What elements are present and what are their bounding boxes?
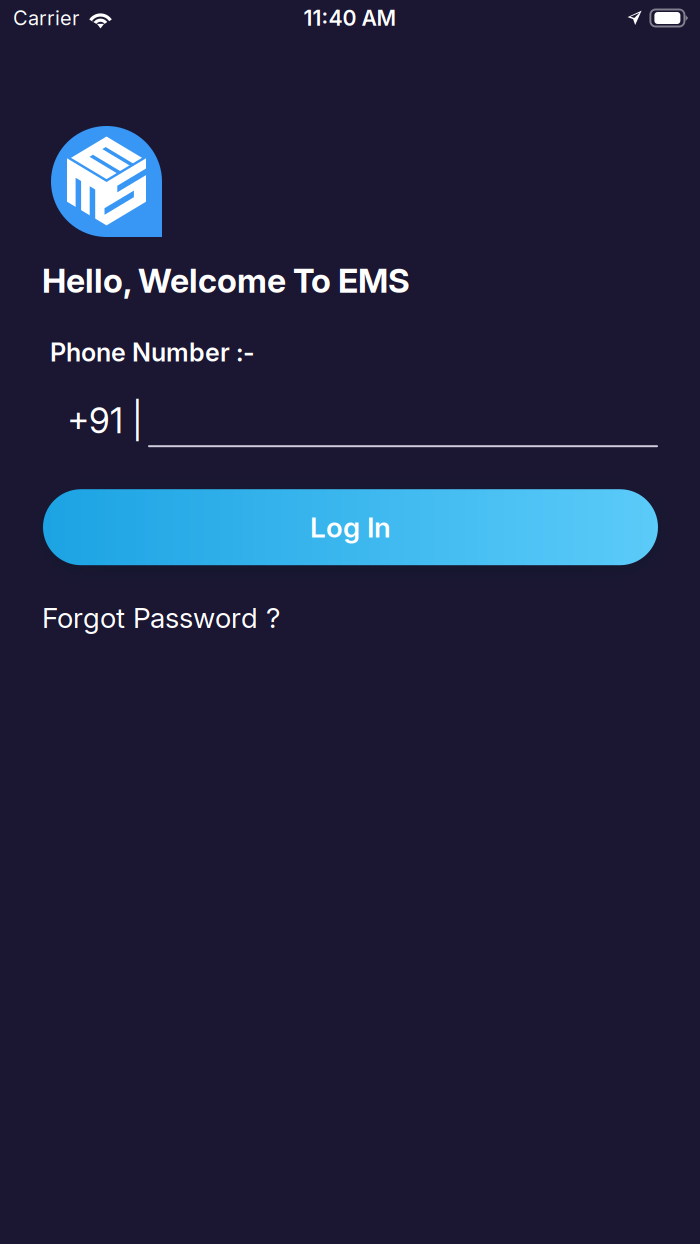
staticText: Carrier <box>13 6 79 30</box>
staticText: Phone Number :- <box>50 337 255 367</box>
button[interactable]: Phone number <box>0 393 700 447</box>
staticText: 11:40 AM <box>303 5 396 31</box>
button[interactable]: Forgot Password ? <box>42 601 280 634</box>
staticText: +91 | <box>67 400 143 441</box>
staticText: Forgot Password ? <box>42 601 280 634</box>
staticText: Hello, Welcome To EMS <box>42 261 410 300</box>
staticText: Log In <box>310 511 391 544</box>
button[interactable]: Log In <box>43 489 658 565</box>
